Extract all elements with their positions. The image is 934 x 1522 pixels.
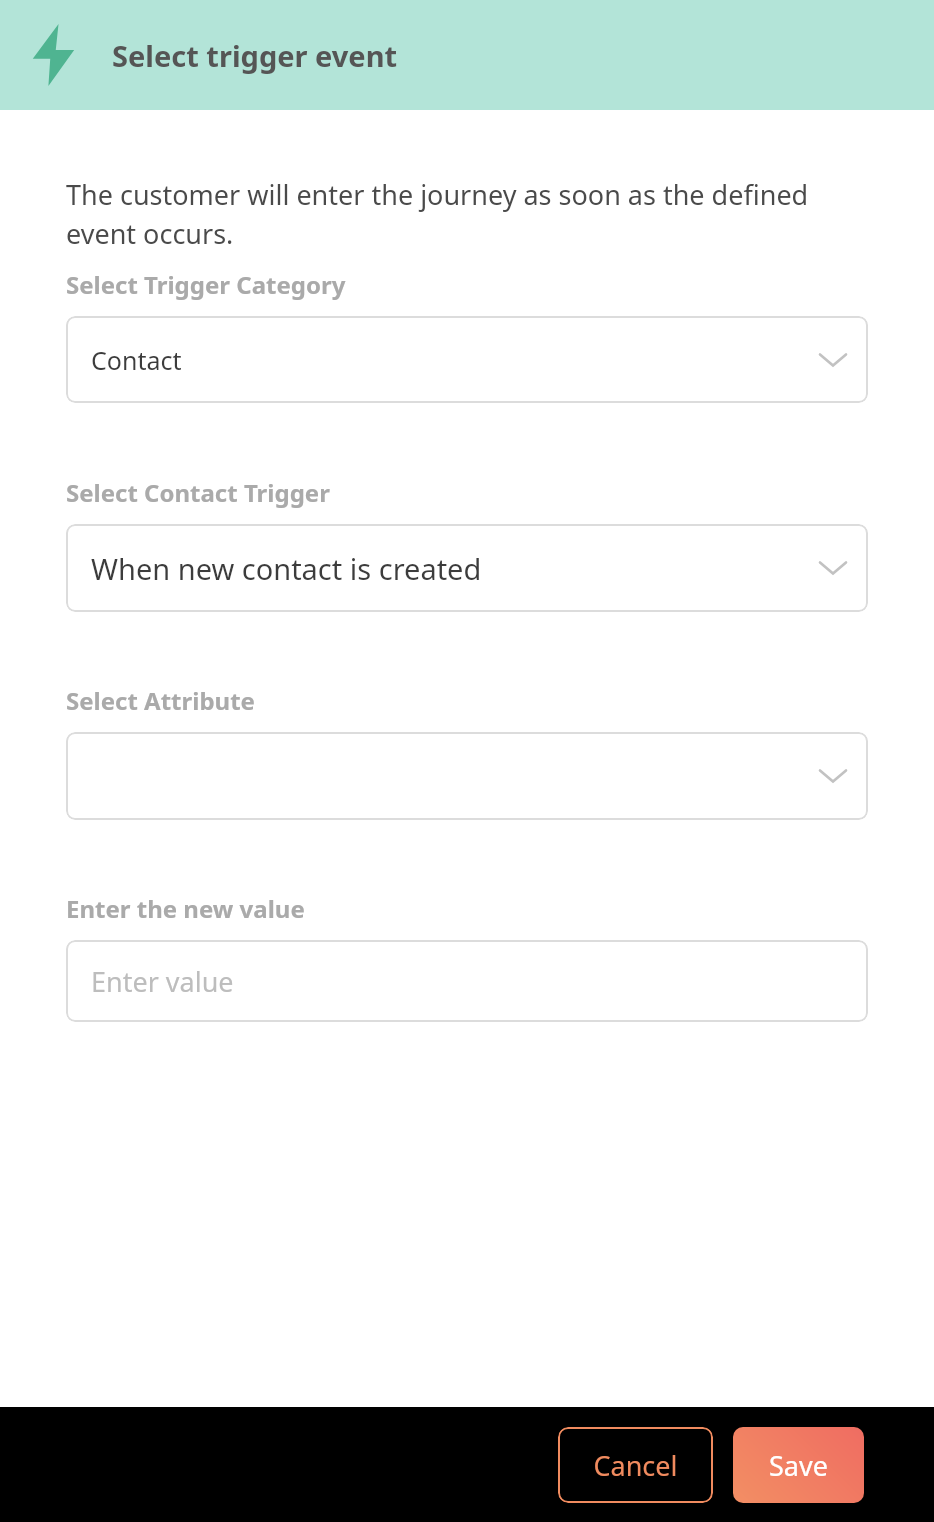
button[interactable] [66, 732, 868, 820]
staticText: Select Trigger Category [66, 268, 346, 301]
button[interactable]: When new contact is created [66, 524, 868, 612]
button[interactable]: Cancel [558, 1427, 713, 1503]
staticText: The customer will enter the journey as s… [66, 176, 868, 252]
button[interactable]: Enter value [66, 940, 868, 1022]
button[interactable]: Contact [66, 316, 868, 403]
staticText: Select trigger event [112, 36, 398, 75]
staticText: Enter value [91, 963, 234, 1000]
staticText: Select Attribute [66, 684, 255, 717]
staticText: Enter the new value [66, 892, 305, 925]
staticText: Contact [91, 343, 182, 377]
staticText: Save [769, 1447, 828, 1484]
staticText: Cancel [593, 1447, 678, 1484]
button[interactable]: Save [733, 1427, 864, 1503]
other: Trigger [30, 24, 76, 86]
staticText: When new contact is created [91, 549, 482, 588]
staticText: Select Contact Trigger [66, 476, 330, 509]
